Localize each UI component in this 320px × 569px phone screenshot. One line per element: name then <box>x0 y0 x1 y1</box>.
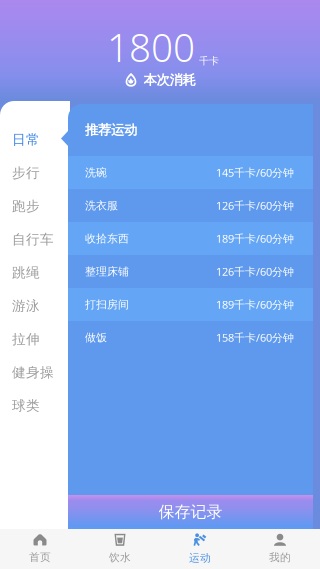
button[interactable]: 运动 <box>160 529 240 569</box>
button[interactable]: 我的 <box>240 529 320 569</box>
staticText: 洗衣服 <box>85 199 118 212</box>
button[interactable]: 游泳 <box>0 289 70 322</box>
staticText: 收拾东西 <box>85 232 129 245</box>
staticText: 整理床铺 <box>85 265 129 278</box>
button[interactable]: 拉伸 <box>0 322 70 356</box>
staticText: 洗碗 <box>85 166 107 179</box>
staticText: 本次消耗 <box>143 72 195 88</box>
staticText: 日常 <box>12 131 40 148</box>
staticText: 跑步 <box>12 198 40 215</box>
button[interactable]: 跳绳 <box>0 256 70 289</box>
staticText: 189千卡/60分钟 <box>216 231 294 246</box>
button[interactable]: 洗碗 <box>68 156 313 189</box>
staticText: 推荐运动 <box>85 122 137 138</box>
staticText: 126千卡/60分钟 <box>216 198 294 213</box>
button[interactable]: 日常 <box>0 123 70 156</box>
button[interactable]: 做饭 <box>68 321 313 354</box>
staticText: 保存记录 <box>158 502 222 522</box>
staticText: 做饭 <box>85 331 107 344</box>
staticText: 饮水 <box>109 551 131 564</box>
staticText: 我的 <box>269 551 291 564</box>
staticText: 126千卡/60分钟 <box>216 264 294 279</box>
staticText: 自行车 <box>12 231 54 248</box>
button[interactable]: 自行车 <box>0 223 70 256</box>
button[interactable]: 首页 <box>0 529 80 569</box>
button[interactable]: 球类 <box>0 389 70 422</box>
staticText: 首页 <box>29 551 51 564</box>
button[interactable]: 洗衣服 <box>68 189 313 222</box>
staticText: 158千卡/60分钟 <box>216 330 294 345</box>
staticText: 健身操 <box>12 364 54 381</box>
staticText: 1800 <box>107 21 195 73</box>
button[interactable]: 保存记录 <box>68 495 313 529</box>
staticText: 打扫房间 <box>85 298 129 311</box>
staticText: 运动 <box>189 551 211 565</box>
staticText: 145千卡/60分钟 <box>216 165 294 180</box>
staticText: 游泳 <box>12 297 40 314</box>
button[interactable]: 整理床铺 <box>68 255 313 288</box>
staticText: 千卡 <box>199 55 219 67</box>
button[interactable]: 收拾东西 <box>68 222 313 255</box>
staticText: 拉伸 <box>12 331 40 348</box>
button[interactable]: 健身操 <box>0 356 70 389</box>
button[interactable]: 饮水 <box>80 529 160 569</box>
button[interactable]: 打扫房间 <box>68 288 313 321</box>
staticText: 步行 <box>12 164 40 181</box>
staticText: 球类 <box>12 397 40 414</box>
button[interactable]: 步行 <box>0 156 70 189</box>
button[interactable]: 跑步 <box>0 189 70 223</box>
staticText: 跳绳 <box>12 264 40 281</box>
staticText: 189千卡/60分钟 <box>216 297 294 312</box>
